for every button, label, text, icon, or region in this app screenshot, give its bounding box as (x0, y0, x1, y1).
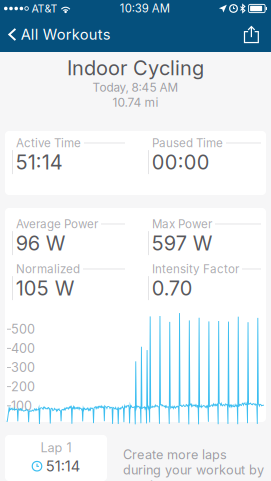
staticText: All Workouts (21, 26, 111, 43)
staticText: 51:14 (46, 457, 80, 475)
staticText: 105 W (16, 276, 75, 300)
staticText: Paused Time (152, 136, 223, 150)
staticText: Lap 1 (40, 440, 71, 455)
button[interactable]: Lap 1 (5, 435, 107, 481)
staticText: 10.74 mi (112, 95, 158, 110)
staticText: 0.70 (152, 276, 193, 300)
staticText: 597 W (152, 231, 213, 255)
staticText: Max Power (152, 217, 212, 231)
staticText: 10:39 AM (120, 2, 170, 15)
staticText: Create more laps during your workout by … (123, 447, 264, 481)
staticText: 96 W (16, 231, 66, 255)
staticText: Average Power (16, 217, 98, 231)
staticText: 51:14 (16, 150, 63, 174)
staticText: AT&T (31, 2, 57, 15)
staticText: 500 (11, 321, 35, 337)
staticText: 200 (11, 379, 35, 394)
staticText: Intensity Factor (152, 262, 239, 276)
button[interactable]: All Workouts (3, 21, 119, 48)
staticText: 400 (11, 341, 35, 356)
staticText: Today, 8:45 AM (92, 80, 178, 95)
staticText: 00:00 (152, 150, 210, 174)
button[interactable]: Share (235, 22, 268, 47)
staticText: 100 (11, 398, 32, 413)
staticText: Indoor Cycling (67, 56, 204, 80)
staticText: Active Time (16, 136, 81, 150)
staticText: 300 (11, 360, 35, 375)
staticText: Normalized (16, 262, 80, 276)
